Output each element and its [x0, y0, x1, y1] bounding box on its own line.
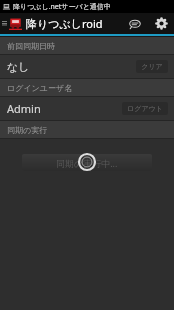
staticText: ログアウト [127, 104, 163, 113]
button[interactable]: なし [0, 55, 174, 78]
button[interactable]: Admin [0, 97, 174, 120]
staticText: なし [7, 60, 136, 74]
staticText: Admin [7, 101, 122, 116]
button[interactable]: Navigate up [1, 13, 8, 34]
button[interactable]: ログアウト [122, 102, 168, 115]
button[interactable]: クリア [136, 60, 168, 73]
button[interactable]: Comments [122, 13, 148, 34]
staticText: クリア [141, 62, 163, 71]
staticText: ログインユーザ名 [7, 83, 73, 93]
staticText: 前回同期日時 [7, 41, 55, 51]
button[interactable]: 同期の実行中... [22, 154, 152, 171]
staticText: 同期の実行 [7, 125, 48, 135]
button[interactable]: App icon [8, 16, 23, 31]
staticText: 降りつぶし.netサーバと通信中 [13, 2, 111, 12]
button[interactable]: Settings [148, 13, 174, 34]
staticText: 同期の実行中... [56, 157, 118, 169]
staticText: 降りつぶしroid [26, 16, 122, 31]
